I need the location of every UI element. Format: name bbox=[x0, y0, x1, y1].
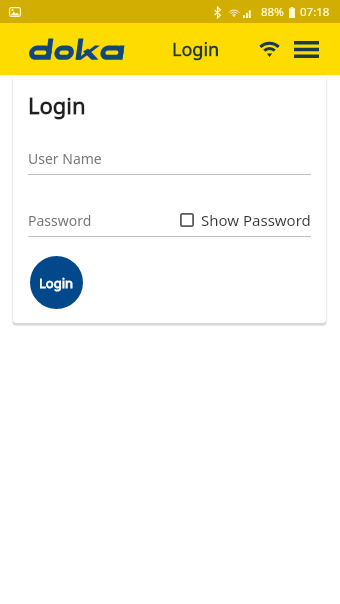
button[interactable]: Login bbox=[30, 256, 83, 309]
staticText: Password bbox=[28, 211, 92, 230]
button[interactable]: Password bbox=[28, 211, 92, 230]
button[interactable]: Login bbox=[172, 33, 220, 65]
staticText: Login bbox=[39, 274, 74, 292]
button[interactable]: Network status bbox=[250, 31, 288, 65]
button[interactable]: Show Password bbox=[180, 210, 311, 230]
staticText: Show Password bbox=[201, 210, 311, 230]
staticText: Login bbox=[172, 37, 220, 62]
staticText: User Name bbox=[28, 149, 102, 168]
staticText: 07:18 bbox=[300, 4, 330, 20]
button[interactable]: Doka bbox=[26, 33, 128, 61]
button[interactable]: Menu bbox=[288, 34, 324, 64]
staticText: 88% bbox=[261, 4, 284, 20]
staticText: Login bbox=[28, 90, 86, 120]
button[interactable]: User Name bbox=[28, 149, 311, 175]
